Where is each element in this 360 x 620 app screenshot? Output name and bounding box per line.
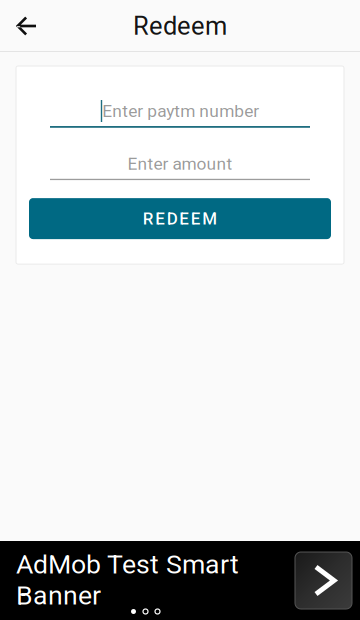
staticText: Redeem bbox=[133, 11, 227, 41]
staticText: Enter paytm number bbox=[102, 101, 259, 121]
staticText: REDEEM bbox=[143, 209, 217, 228]
staticText: AdMob Test Smart bbox=[16, 549, 239, 580]
staticText: Banner bbox=[16, 580, 101, 611]
button[interactable]: REDEEM bbox=[29, 198, 331, 239]
staticText: Enter amount bbox=[127, 154, 232, 174]
button[interactable]: Back bbox=[0, 0, 48, 52]
button[interactable]: Next bbox=[295, 552, 352, 609]
